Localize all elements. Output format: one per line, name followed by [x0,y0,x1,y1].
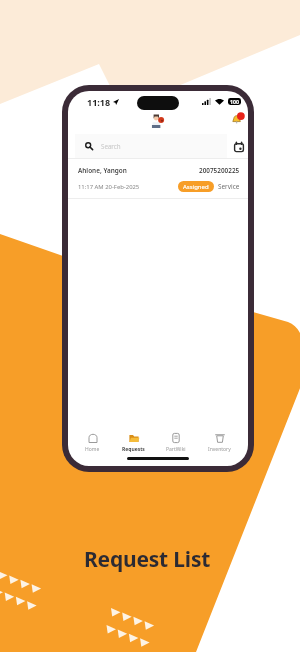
staticText: Request List [84,545,211,574]
staticText: 100 [230,98,239,105]
staticText: Assigned [183,183,209,191]
button[interactable]: Home [81,432,104,454]
button[interactable]: Calendar [234,142,244,152]
staticText: Requests [122,446,145,453]
staticText: 11:17 AM 20-Feb-2025 [78,183,140,191]
staticText: Inventory [208,446,231,453]
staticText: 11:18 [87,96,111,108]
staticText: Home [85,446,100,453]
button[interactable]: Search [75,134,227,158]
button[interactable]: Requests [118,432,149,454]
button[interactable]: PartWiki [162,432,190,454]
button[interactable]: Ahlone, Yangon [68,159,248,198]
staticText: Ahlone, Yangon [78,166,127,175]
staticText: PartWiki [166,446,186,453]
staticText: Search [101,142,121,150]
staticText: 20075200225 [199,166,240,175]
staticText: Service [218,182,240,191]
button[interactable]: Inventory [204,432,235,454]
button[interactable]: Notifications [231,113,244,126]
